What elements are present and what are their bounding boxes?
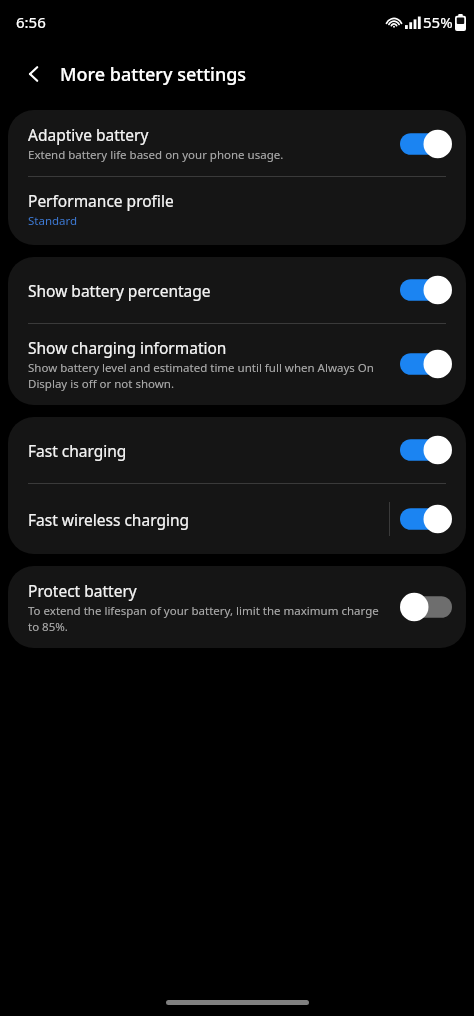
button[interactable]: Toggle off: [400, 592, 452, 622]
button[interactable]: Show battery percentage: [8, 257, 466, 323]
staticText: Fast charging: [28, 440, 127, 461]
button[interactable]: Protect battery: [8, 566, 466, 648]
staticText: Show battery level and estimated time un…: [28, 360, 392, 391]
button[interactable]: Toggle on: [400, 435, 452, 465]
button[interactable]: Performance profile: [8, 177, 466, 245]
button[interactable]: Fast wireless charging: [8, 484, 466, 554]
staticText: Extend battery life based on your phone …: [28, 147, 284, 163]
staticText: Protect battery: [28, 580, 137, 601]
button[interactable]: Toggle on: [400, 504, 452, 534]
button[interactable]: Toggle on: [400, 275, 452, 305]
button[interactable]: Toggle on: [400, 129, 452, 159]
button[interactable]: Fast charging: [8, 417, 466, 483]
button[interactable]: Toggle on: [400, 349, 452, 379]
staticText: Standard: [28, 213, 78, 229]
staticText: 55%: [423, 12, 453, 32]
staticText: Fast wireless charging: [28, 509, 190, 530]
staticText: 6:56: [16, 12, 46, 32]
button[interactable]: Show charging information: [8, 324, 466, 405]
staticText: To extend the lifespan of your battery, …: [28, 603, 392, 634]
staticText: Show battery percentage: [28, 280, 211, 301]
staticText: Performance profile: [28, 190, 174, 211]
button[interactable]: Back: [14, 54, 54, 94]
button[interactable]: Adaptive battery: [8, 110, 466, 176]
staticText: Adaptive battery: [28, 124, 149, 145]
staticText: Show charging information: [28, 337, 227, 358]
staticText: More battery settings: [60, 62, 247, 87]
